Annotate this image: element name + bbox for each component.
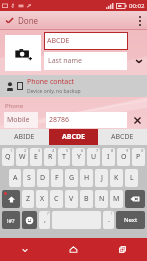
button[interactable]: Next [116,211,145,229]
button[interactable]: Recent apps [98,238,147,261]
staticText: I [107,152,110,162]
staticText: ? [47,211,49,216]
button[interactable]: G [65,169,78,187]
staticText: 5 [66,148,69,153]
staticText: 4 [52,148,55,153]
staticText: Last name [48,56,83,66]
button[interactable]: Z [22,190,34,208]
staticText: Phone [5,102,24,110]
button[interactable]: . [103,211,114,229]
button[interactable]: ABCDE [44,32,128,50]
staticText: J [101,173,103,183]
staticText: ! [111,211,113,216]
staticText: Z [26,194,31,204]
button[interactable]: Add photo [5,35,41,71]
staticText: G [69,173,75,183]
staticText: Device only, no backup [27,88,81,95]
staticText: ABIDE [14,132,35,142]
staticText: K [114,173,119,183]
button[interactable]: A [9,169,21,187]
button[interactable]: ABIDE [0,129,49,145]
button[interactable]: More options [132,11,147,30]
button[interactable]: Clear phone number [129,112,145,128]
staticText: 8 [111,148,114,153]
staticText: Done [18,15,39,26]
button[interactable]: Last name [44,52,127,70]
staticText: D [40,173,46,183]
staticText: T [62,152,66,162]
button[interactable]: K [110,169,123,187]
staticText: L [130,173,134,183]
button[interactable]: Emoji [22,211,37,229]
staticText: U [91,152,97,162]
button[interactable]: V [65,190,78,208]
button[interactable]: Home [49,238,98,261]
staticText: 0 [141,148,144,153]
staticText: O [121,152,127,162]
button[interactable]: Shift [2,190,20,208]
staticText: E [34,152,38,162]
button[interactable]: X [36,190,48,208]
button[interactable]: 28786 [46,112,127,128]
staticText: Y [77,152,81,162]
staticText: R [48,152,53,162]
button[interactable]: C [50,190,63,208]
staticText: W [19,152,26,162]
staticText: 00:02 [129,2,145,10]
button[interactable]: Mobile [4,112,38,128]
staticText: 1 [10,148,13,153]
staticText: S [27,173,31,183]
button[interactable]: Back [0,238,49,261]
staticText: 2 [24,148,27,153]
staticText: Phone contact [27,77,75,87]
staticText: Next [124,216,138,224]
button[interactable]: ABCDE [98,129,147,145]
staticText: M [113,194,120,204]
staticText: H [84,173,90,183]
button[interactable]: O [117,148,130,166]
button[interactable]: H [80,169,93,187]
button[interactable]: U [87,148,100,166]
button[interactable]: R [44,148,56,166]
button[interactable]: I [102,148,115,166]
staticText: 9 [126,148,129,153]
button[interactable]: L [125,169,138,187]
staticText: B [84,194,89,204]
button[interactable]: Expand name fields [130,52,147,69]
button[interactable]: ABCDE [49,129,98,145]
staticText: Q [5,152,11,162]
staticText: V [69,194,74,204]
button[interactable]: Q [2,148,14,166]
button[interactable]: , [39,211,50,229]
button[interactable]: P [132,148,145,166]
staticText: 28786 [49,115,70,125]
button[interactable]: J [95,169,108,187]
button[interactable]: W [16,148,28,166]
staticText: 7 [96,148,99,153]
button[interactable]: Done [5,11,39,30]
button[interactable]: B [80,190,93,208]
button[interactable]: F [51,169,63,187]
staticText: X [40,194,45,204]
staticText: 6 [81,148,84,153]
button[interactable]: Backspace [125,190,145,208]
button[interactable]: Phone contact [0,75,147,97]
staticText: 3 [38,148,41,153]
staticText: , [44,215,46,225]
staticText: P [136,152,141,162]
button[interactable]: D [37,169,49,187]
button[interactable]: T [58,148,70,166]
button[interactable]: M [110,190,123,208]
staticText: ABCDE [111,132,134,142]
button[interactable]: S [23,169,35,187]
staticText: Mobile [7,115,30,125]
staticText: ABCDE [62,132,86,142]
staticText: C [54,194,59,204]
staticText: ABCDE [47,36,70,46]
button[interactable]: E [30,148,42,166]
staticText: . [108,215,110,225]
button[interactable]: !#? [2,211,20,229]
button[interactable]: N [95,190,108,208]
button[interactable]: Y [72,148,85,166]
